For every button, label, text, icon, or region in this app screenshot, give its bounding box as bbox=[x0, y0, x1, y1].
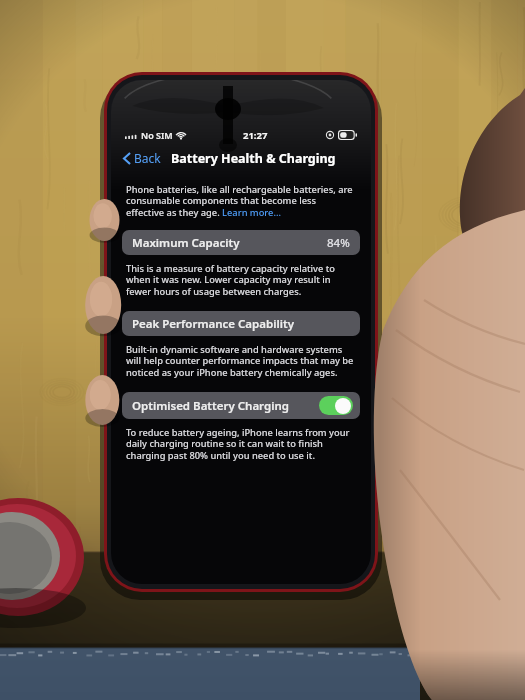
staticText: No SIM bbox=[141, 129, 173, 141]
staticText: Optimised Battery Charging bbox=[132, 398, 289, 414]
button[interactable]: Optimised Battery Charging bbox=[122, 392, 360, 419]
staticText: This is a measure of battery capacity re… bbox=[126, 262, 356, 298]
staticText: Maximum Capacity bbox=[132, 235, 240, 251]
button[interactable]: Back bbox=[121, 148, 163, 168]
staticText: Peak Performance Capability bbox=[132, 316, 294, 332]
staticText: 84% bbox=[327, 235, 350, 251]
staticText: Back bbox=[134, 150, 161, 166]
staticText: Phone batteries, like all rechargeable b… bbox=[126, 183, 356, 219]
staticText: Battery Health & Charging bbox=[171, 150, 336, 167]
button[interactable]: Optimised Battery Charging toggle, on bbox=[319, 396, 353, 415]
staticText: To reduce battery ageing, iPhone learns … bbox=[126, 426, 356, 462]
button[interactable]: Maximum Capacity bbox=[122, 230, 360, 255]
staticText: Built-in dynamic software and hardware s… bbox=[126, 343, 356, 379]
staticText: 21:27 bbox=[243, 129, 268, 142]
button[interactable]: Peak Performance Capability bbox=[122, 311, 360, 336]
